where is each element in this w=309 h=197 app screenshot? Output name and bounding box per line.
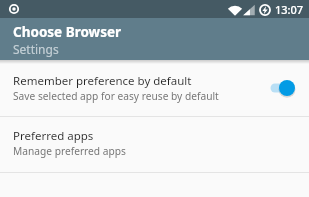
staticText: 13:07 bbox=[275, 2, 304, 17]
other: Mobile signal bbox=[243, 4, 255, 16]
button[interactable]: Remember preference by default bbox=[0, 60, 309, 116]
other: Battery saver on bbox=[259, 4, 271, 16]
button[interactable]: Preferred apps bbox=[0, 117, 309, 172]
staticText: Settings bbox=[13, 41, 59, 57]
staticText: Manage preferred apps bbox=[13, 144, 126, 158]
staticText: Preferred apps bbox=[13, 128, 94, 144]
staticText: Save selected app for easy reuse by defa… bbox=[13, 89, 219, 103]
button[interactable]: Remember preference by default, on bbox=[269, 79, 295, 97]
other: Wi-Fi connected bbox=[228, 4, 242, 16]
staticText: Remember preference by default bbox=[13, 73, 192, 89]
other: Notification bbox=[8, 3, 20, 15]
staticText: Choose Browser bbox=[13, 23, 121, 41]
